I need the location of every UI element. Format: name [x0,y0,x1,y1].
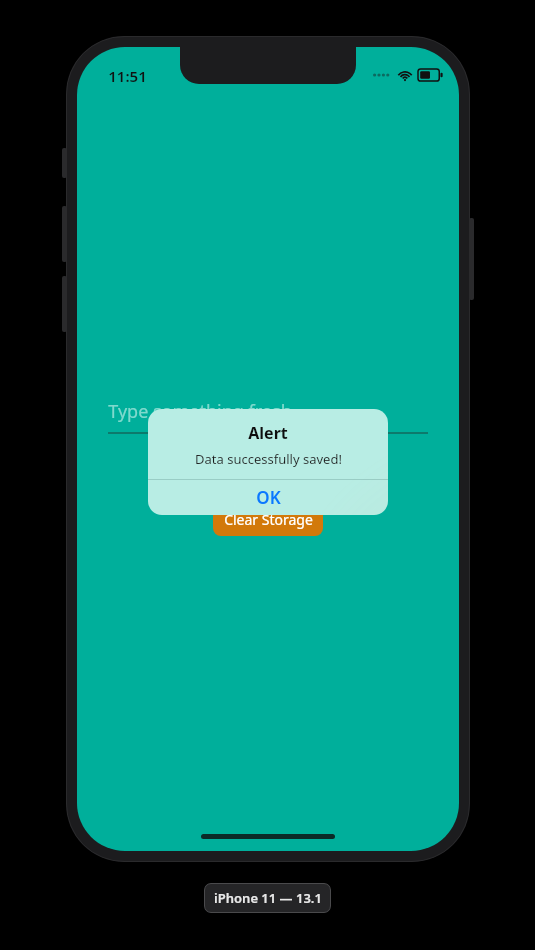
staticText: Type something fresh [108,399,292,424]
staticText: 11:51 [108,66,147,86]
staticText: iPhone 11 — 13.1 [214,889,322,907]
staticText: Alert [248,422,288,444]
button[interactable]: OK [148,480,388,515]
staticText: OK [256,486,281,509]
staticText: Data successfully saved! [195,450,342,468]
button[interactable]: Type something fresh [108,397,428,435]
staticText: Clear Storage [224,510,313,529]
button[interactable]: iPhone 11 — 13.1 [204,883,331,913]
button[interactable]: Clear Storage [213,502,323,536]
